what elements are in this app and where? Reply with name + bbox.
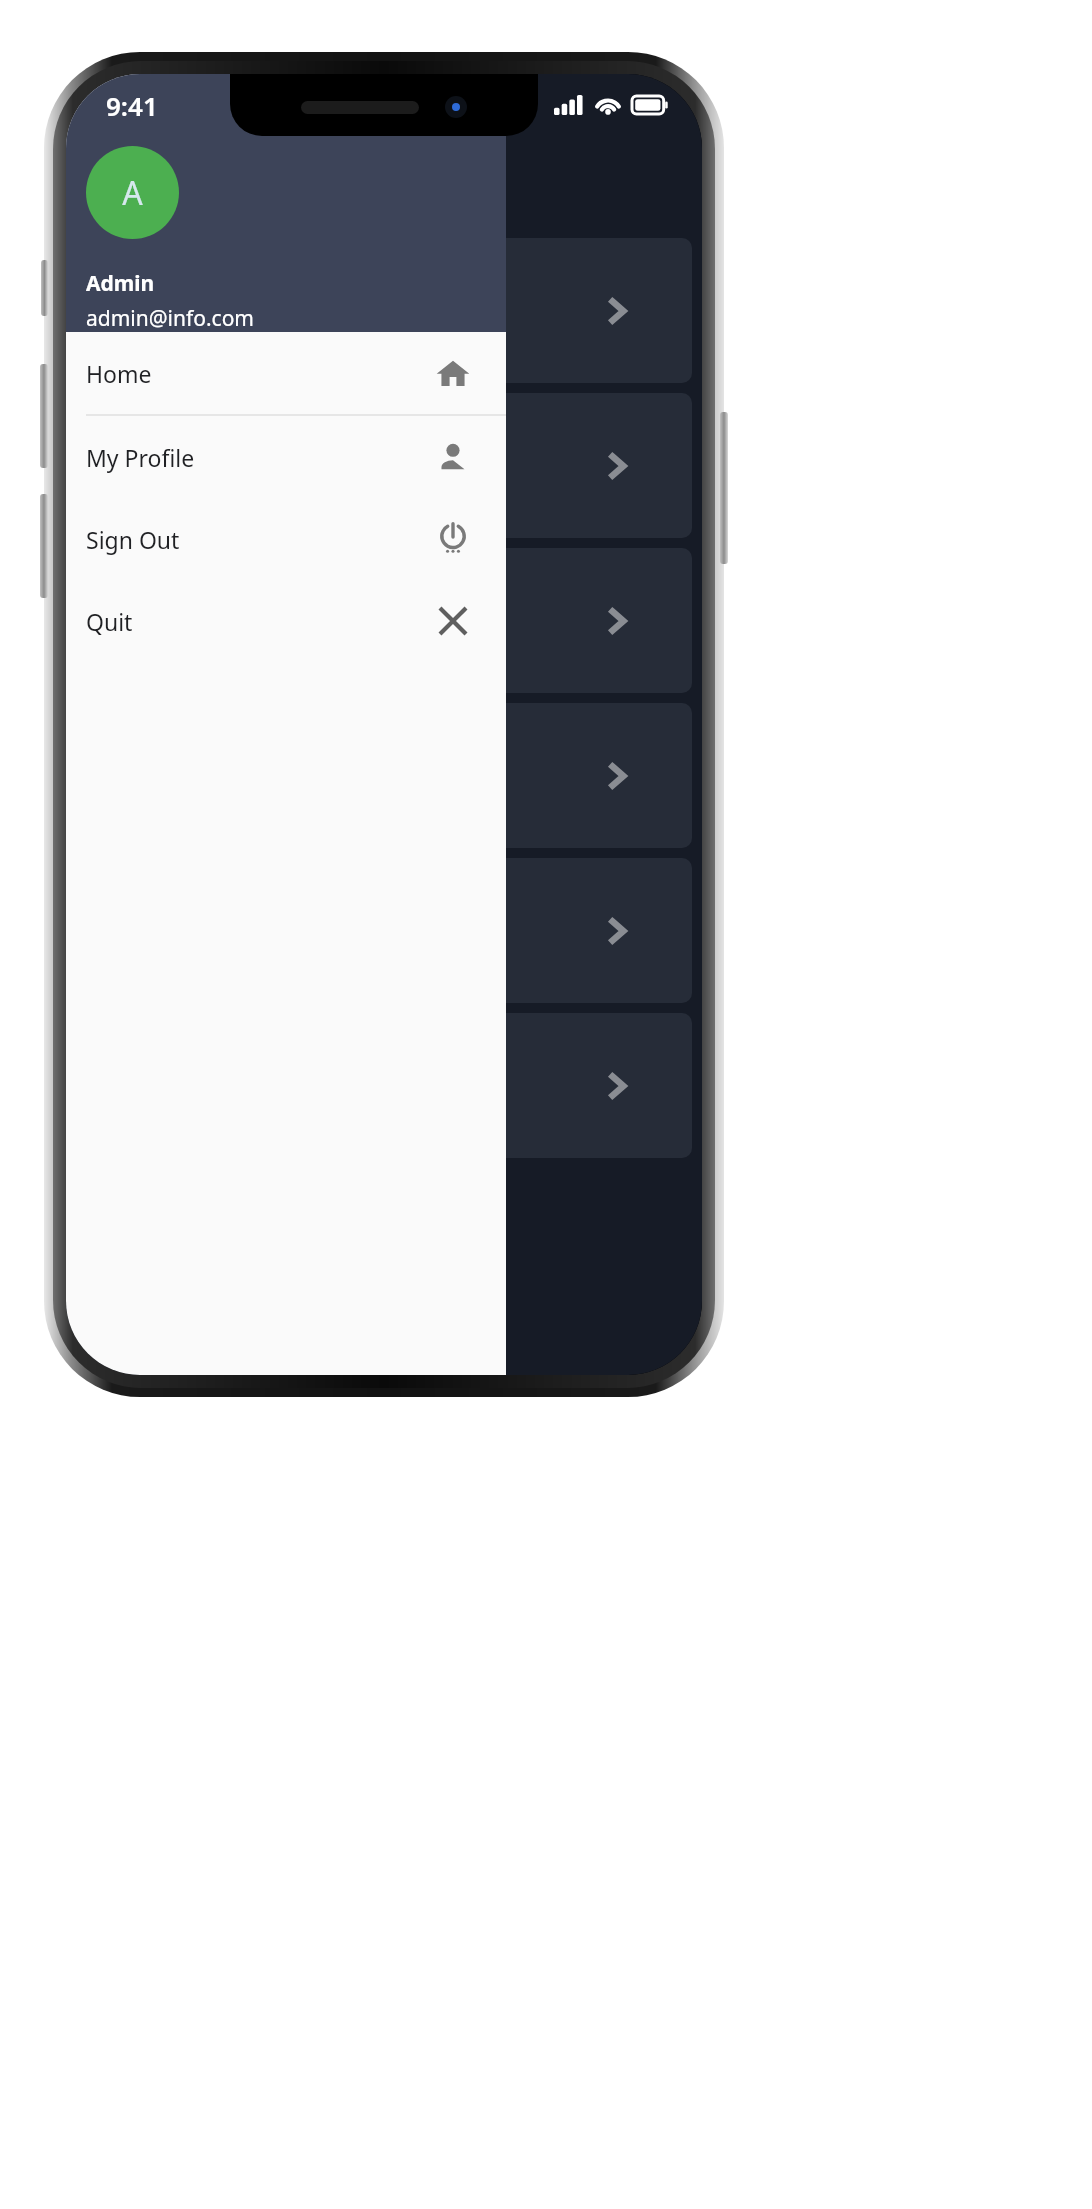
button[interactable]: Sign Out bbox=[66, 498, 506, 580]
other: Open item bbox=[598, 911, 638, 951]
button[interactable]: Home bbox=[66, 332, 506, 414]
staticText: admin@info.com bbox=[86, 304, 254, 332]
other: Open item bbox=[598, 756, 638, 796]
button[interactable]: A bbox=[86, 146, 179, 239]
staticText: A bbox=[122, 171, 143, 215]
staticText: Sign Out bbox=[86, 524, 180, 555]
button[interactable]: Open item bbox=[76, 393, 692, 538]
other: Open item bbox=[598, 446, 638, 486]
button[interactable]: Quit bbox=[66, 580, 506, 662]
other: Open item bbox=[598, 291, 638, 331]
other: Open item bbox=[598, 1066, 638, 1106]
staticText: My Profile bbox=[86, 442, 195, 473]
button[interactable]: My Profile bbox=[66, 416, 506, 498]
staticText: 9:41 bbox=[106, 88, 158, 123]
button[interactable]: Open item bbox=[76, 703, 692, 848]
button[interactable]: Open item bbox=[76, 858, 692, 1003]
staticText: Home bbox=[86, 358, 152, 389]
button[interactable]: Open item bbox=[76, 1013, 692, 1158]
button[interactable]: Open item bbox=[76, 548, 692, 693]
other: Open item bbox=[598, 601, 638, 641]
staticText: Admin bbox=[86, 269, 155, 298]
button[interactable]: Open item bbox=[76, 238, 692, 383]
staticText: Quit bbox=[86, 606, 133, 637]
